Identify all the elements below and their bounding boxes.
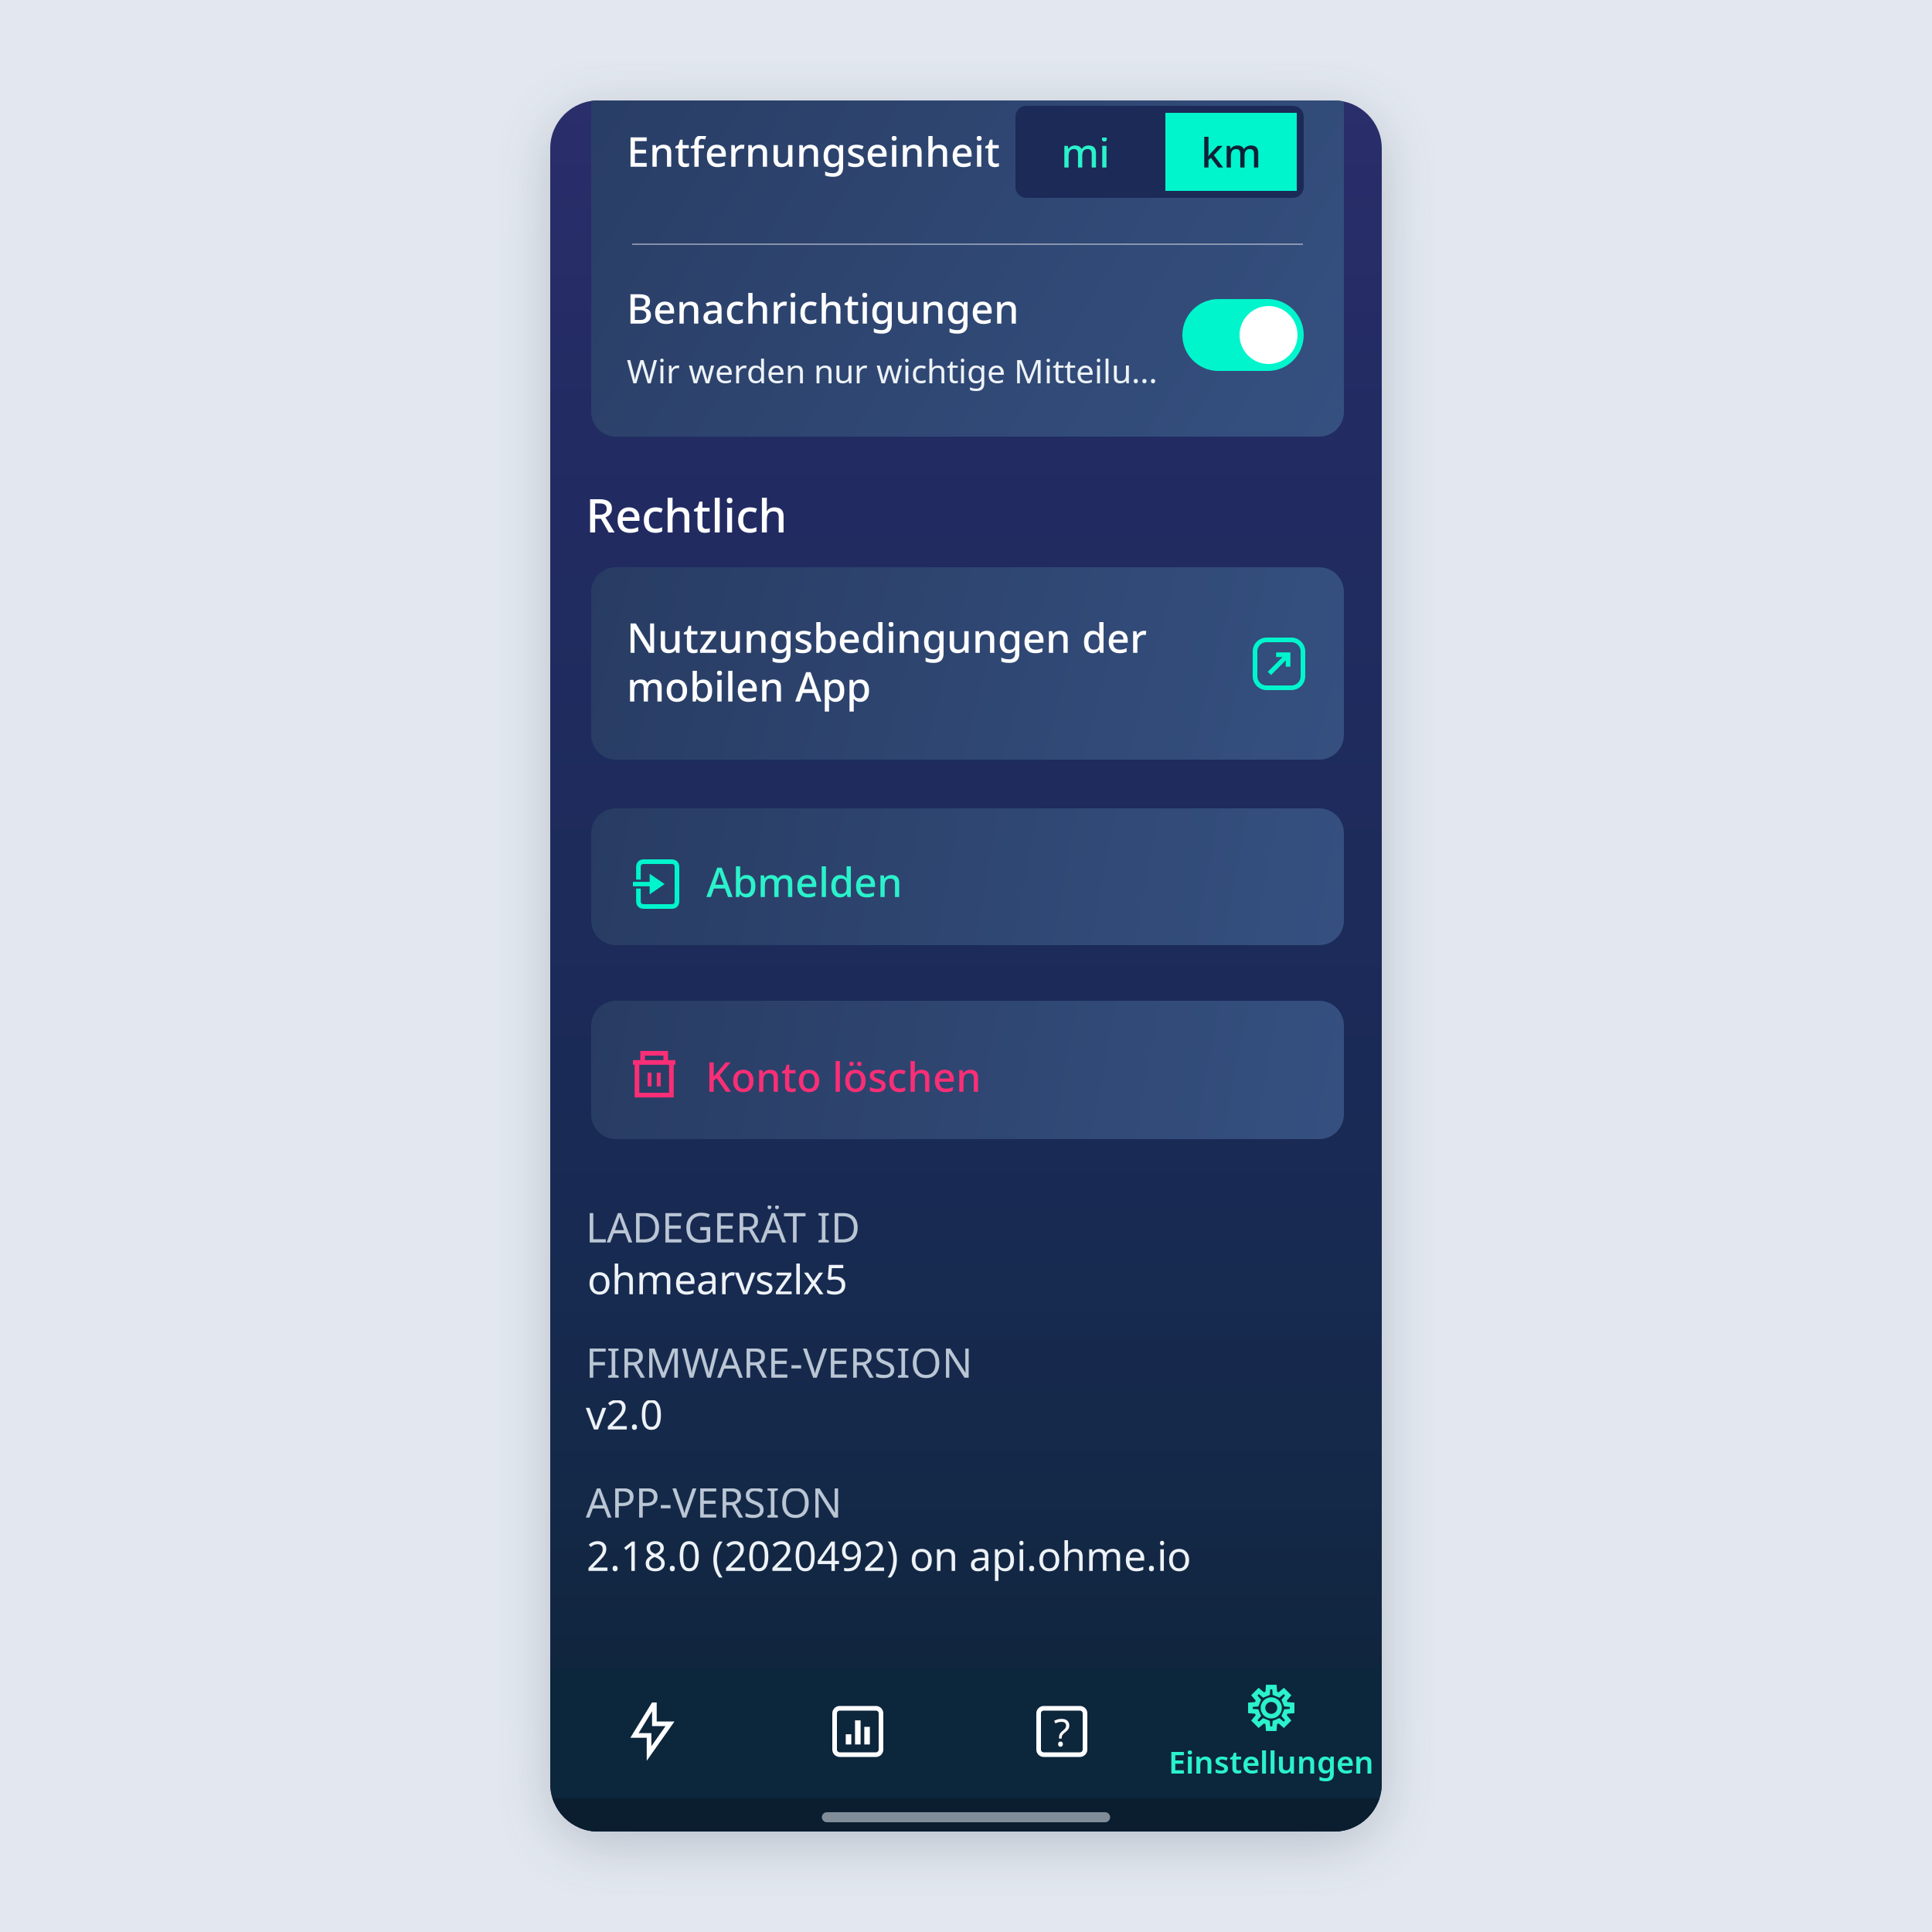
staticText: ? — [1054, 1706, 1070, 1757]
staticText: APP-VERSION — [586, 1475, 842, 1529]
button[interactable]: Abmelden — [591, 808, 1344, 945]
staticText: v2.0 — [586, 1387, 663, 1441]
button[interactable]: Nutzungsbedingungen der — [591, 567, 1344, 760]
staticText: mi — [1061, 125, 1110, 179]
staticText: Entfernungseinheit — [627, 124, 1000, 178]
button[interactable]: Einstellungen — [1148, 1691, 1395, 1822]
button[interactable]: Hilfe — [959, 1669, 1162, 1798]
button[interactable]: Benachrichtigungen — [1182, 299, 1304, 371]
button[interactable]: mi — [1022, 113, 1165, 191]
staticText: ohmearvszlx5 — [587, 1252, 848, 1305]
staticText: Wir werden nur wichtige Mitteilu… — [627, 349, 1158, 392]
staticText: Abmelden — [706, 855, 903, 908]
button[interactable]: Statistiken — [755, 1669, 957, 1798]
staticText: FIRMWARE-VERSION — [586, 1335, 973, 1389]
staticText: Einstellungen — [1168, 1741, 1374, 1782]
button[interactable]: Laden — [554, 1669, 757, 1798]
button[interactable]: km — [1165, 113, 1297, 191]
staticText: Nutzungsbedingungen der — [627, 611, 1147, 664]
staticText: Benachrichtigungen — [627, 281, 1019, 335]
staticText: LADEGERÄT ID — [586, 1200, 860, 1254]
staticText: km — [1201, 125, 1261, 179]
staticText: mobilen App — [627, 659, 871, 713]
button[interactable]: Konto löschen — [591, 1001, 1344, 1139]
staticText: 2.18.0 (2020492) on api.ohme.io — [587, 1529, 1191, 1582]
staticText: Konto löschen — [706, 1049, 981, 1103]
staticText: Rechtlich — [586, 484, 787, 545]
